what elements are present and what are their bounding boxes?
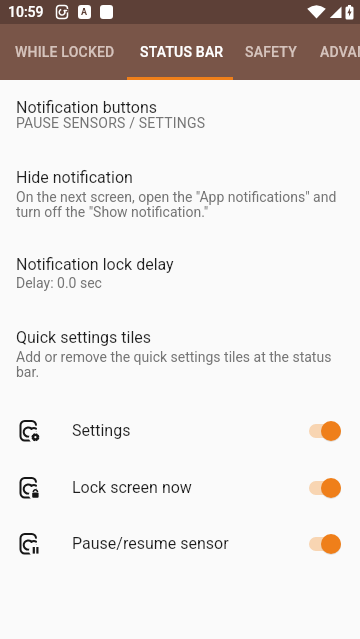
button[interactable]: Lock screen now (0, 459, 360, 516)
staticText: Add or remove the quick settings tiles a… (16, 349, 332, 381)
button[interactable]: Notification buttons (0, 98, 360, 133)
staticText: Pause/resume sensor (72, 534, 229, 553)
staticText: Delay: 0.0 sec (16, 275, 102, 291)
staticText: Hide notification (16, 168, 133, 187)
staticText: Lock screen now (72, 478, 192, 497)
staticText: WHILE LOCKED (15, 44, 115, 60)
staticText: Quick settings tiles (16, 328, 152, 347)
staticText: SAFETY (245, 44, 297, 60)
staticText: Settings (72, 421, 131, 440)
button[interactable]: Quick settings tiles (0, 328, 360, 381)
button[interactable]: Notification lock delay (0, 255, 360, 291)
staticText: Notification buttons (16, 98, 157, 117)
button[interactable]: ADVANCED (308, 24, 360, 80)
button[interactable]: Pause/resume sensor (0, 515, 360, 572)
button[interactable]: STATUS BAR (129, 24, 234, 80)
staticText: STATUS BAR (140, 44, 224, 60)
staticText: 10:59 (8, 4, 44, 20)
button[interactable] (309, 534, 341, 554)
button[interactable]: Hide notification (0, 168, 360, 221)
staticText: A (81, 7, 88, 18)
staticText: ADVANCED (320, 44, 360, 60)
button[interactable] (309, 421, 341, 441)
staticText: Notification lock delay (16, 255, 174, 274)
button[interactable] (309, 478, 341, 498)
button[interactable]: WHILE LOCKED (0, 24, 129, 80)
staticText: PAUSE SENSORS / SETTINGS (16, 115, 206, 131)
button[interactable]: SAFETY (234, 24, 308, 80)
staticText: On the next screen, open the "App notifi… (16, 189, 337, 221)
button[interactable]: Settings (0, 402, 360, 459)
